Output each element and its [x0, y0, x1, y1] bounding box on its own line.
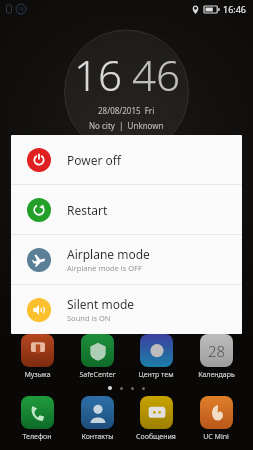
button[interactable]: Сообщения — [127, 396, 185, 442]
button[interactable]: Контакты — [68, 396, 126, 442]
staticText: UC Mini — [203, 432, 229, 442]
staticText: No city | Unknown — [89, 120, 164, 131]
staticText: Restart — [67, 202, 108, 218]
staticText: 16 — [74, 46, 122, 103]
button[interactable]: Silent mode — [11, 285, 242, 334]
button[interactable]: Airplane mode — [11, 235, 242, 284]
staticText: 74 — [18, 6, 24, 13]
staticText: Airplane mode — [67, 246, 150, 262]
staticText: Центр тем — [138, 370, 174, 380]
staticText: Телефон — [22, 432, 52, 442]
staticText: Power off — [67, 152, 122, 168]
button[interactable]: Power off — [11, 135, 242, 184]
staticText: 16:46 — [223, 3, 247, 15]
button[interactable]: Музыка — [8, 334, 66, 380]
button[interactable]: Центр тем — [127, 334, 185, 380]
button[interactable]: UC Mini — [187, 396, 245, 442]
staticText: 46 — [132, 46, 180, 103]
staticText: Silent mode — [67, 296, 135, 312]
staticText: 28/08/2015 Fri — [98, 105, 155, 116]
staticText: Календарь — [198, 370, 235, 380]
button[interactable]: Restart — [11, 185, 242, 234]
staticText: Музыка — [24, 370, 51, 380]
button[interactable]: SafeCenter — [68, 334, 126, 380]
staticText: Airplane mode is OFF — [67, 263, 142, 273]
staticText: Сообщения — [136, 432, 176, 442]
staticText: 28 — [208, 341, 226, 361]
staticText: Sound is ON — [67, 313, 111, 323]
button[interactable]: 28 — [187, 334, 245, 380]
staticText: SafeCenter — [79, 370, 116, 380]
button[interactable]: Телефон — [8, 396, 66, 442]
staticText: Контакты — [81, 432, 114, 442]
